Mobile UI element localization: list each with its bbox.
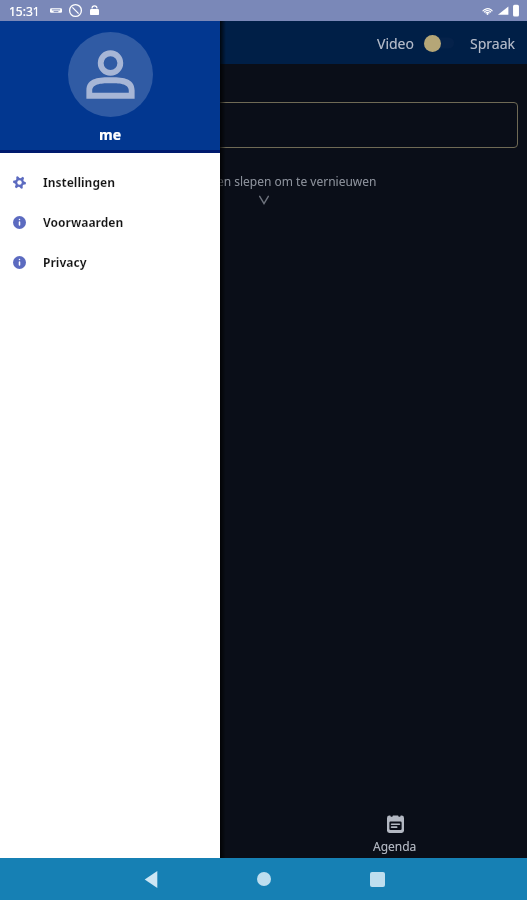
staticText: me <box>99 125 122 144</box>
staticText: Video <box>377 34 414 53</box>
button[interactable]: Home <box>241 858 287 900</box>
button[interactable]: Schakel video of spraak <box>423 33 461 53</box>
button[interactable]: Instellingen <box>0 162 220 202</box>
button[interactable]: Agenda <box>356 814 434 854</box>
staticText: 15:31 <box>9 3 40 19</box>
staticText: Spraak <box>470 34 515 53</box>
button[interactable]: Recente apps <box>354 858 400 900</box>
button[interactable]: Privacy <box>0 242 220 282</box>
staticText: Instellingen <box>43 174 115 190</box>
button[interactable]: Terug <box>128 858 174 900</box>
staticText: Voorwaarden <box>43 214 124 230</box>
staticText: Agenda <box>373 838 417 854</box>
staticText: Naar beneden slepen om te vernieuwen <box>0 173 527 189</box>
staticText: Privacy <box>43 254 87 270</box>
button[interactable]: Voorwaarden <box>0 202 220 242</box>
